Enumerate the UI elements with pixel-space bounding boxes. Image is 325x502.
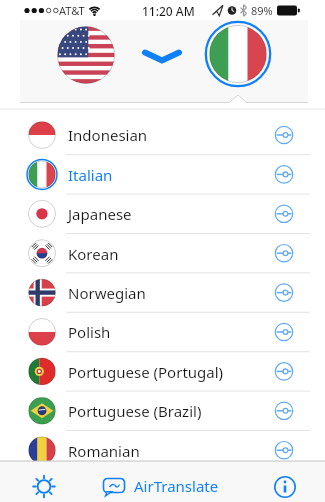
staticText: Romanian xyxy=(68,441,140,461)
button[interactable] xyxy=(206,22,270,86)
button[interactable]: Italian xyxy=(0,155,325,194)
button[interactable]: Japanese xyxy=(0,194,325,233)
staticText: AirTranslate xyxy=(134,476,219,496)
staticText: AT&T xyxy=(59,3,85,18)
button[interactable]: Polish xyxy=(0,312,325,351)
button[interactable]: Norwegian xyxy=(0,273,325,312)
staticText: Italian xyxy=(68,165,113,185)
staticText: Indonesian xyxy=(68,125,148,145)
button[interactable]: Indonesian xyxy=(0,115,325,154)
staticText: 89% xyxy=(251,3,273,18)
staticText: 11:20 AM xyxy=(142,3,195,19)
button[interactable]: Korean xyxy=(0,234,325,273)
button[interactable]: Romanian xyxy=(0,431,325,470)
button[interactable] xyxy=(57,26,115,84)
button[interactable]: Portuguese (Portugal) xyxy=(0,352,325,391)
staticText: Norwegian xyxy=(68,283,146,303)
button[interactable]: AirTranslate xyxy=(100,470,230,502)
staticText: Korean xyxy=(68,244,119,264)
staticText: Polish xyxy=(68,322,111,342)
staticText: Japanese xyxy=(68,204,132,224)
button[interactable]: Portuguese (Brazil) xyxy=(0,391,325,430)
button[interactable] xyxy=(270,470,302,502)
staticText: Portuguese (Brazil) xyxy=(68,401,202,421)
staticText: Portuguese (Portugal) xyxy=(68,362,224,382)
button[interactable] xyxy=(28,470,60,502)
